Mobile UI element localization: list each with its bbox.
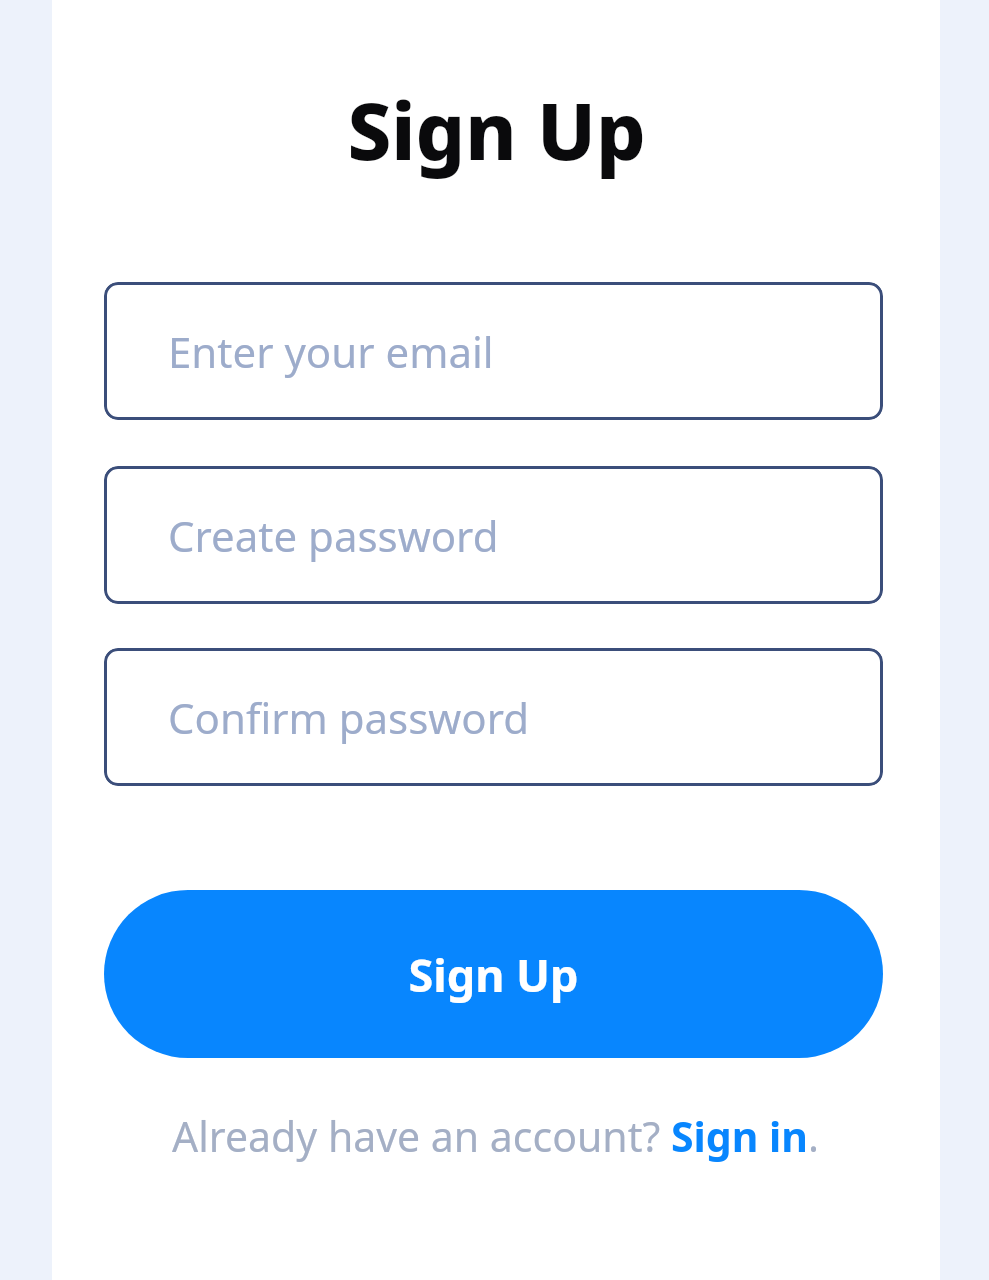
button[interactable]: Enter your email [104, 282, 883, 420]
button[interactable]: Create password [104, 466, 883, 604]
staticText: Enter your email [168, 323, 494, 380]
staticText: Already have an account? Sign in. [172, 1108, 819, 1164]
button[interactable]: Sign Up [104, 890, 883, 1058]
staticText: Sign Up [408, 944, 579, 1005]
button[interactable]: Sign in [148, 1108, 842, 1248]
staticText: Sign Up [347, 77, 646, 183]
staticText: Create password [168, 507, 499, 564]
staticText: Confirm password [168, 689, 530, 746]
button[interactable]: Confirm password [104, 648, 883, 786]
